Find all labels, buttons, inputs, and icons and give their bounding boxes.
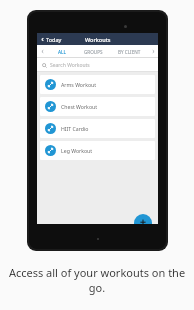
staticText: GROUPS [84, 49, 103, 55]
button[interactable]: Arms Workout [40, 75, 155, 94]
staticText: Today [46, 36, 62, 43]
button[interactable]: Leg Workout [40, 141, 155, 160]
button[interactable]: Chest Workout [40, 97, 155, 116]
staticText: BY CLIENT [118, 49, 141, 55]
staticText: Leg Workout [61, 147, 93, 154]
button[interactable]: Today [37, 33, 65, 45]
staticText: Workouts [85, 36, 111, 43]
button[interactable]: More tabs [148, 45, 158, 58]
staticText: HIIT Cardio [61, 125, 89, 132]
button[interactable]: BY CLIENT [110, 45, 148, 58]
button[interactable]: Previous tabs [37, 45, 47, 58]
button[interactable]: Search Workouts [37, 58, 158, 72]
staticText: ALL [58, 49, 66, 55]
staticText: Arms Workout [61, 81, 97, 88]
staticText: Chest Workout [61, 103, 98, 110]
staticText: Access all of your workouts on the go. [6, 265, 188, 295]
button[interactable]: HIIT Cardio [40, 119, 155, 138]
button[interactable]: Add workout [134, 214, 152, 224]
button[interactable]: ALL [47, 45, 76, 58]
button[interactable]: GROUPS [76, 45, 110, 58]
staticText: Search Workouts [50, 62, 90, 69]
